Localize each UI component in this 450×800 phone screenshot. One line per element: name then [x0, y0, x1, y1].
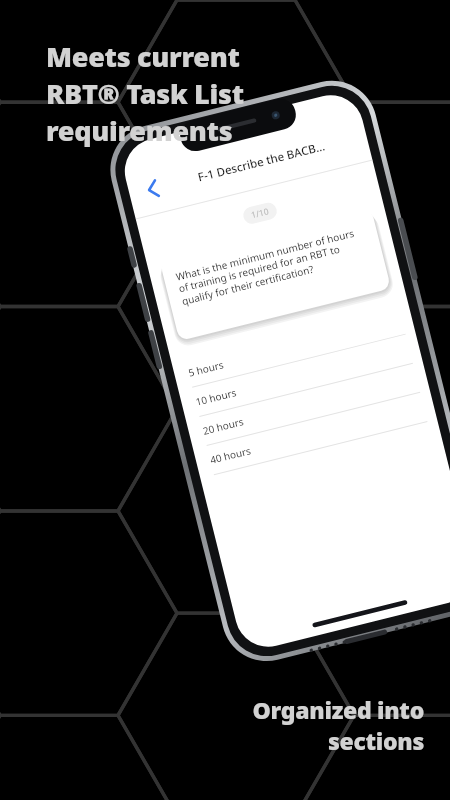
- staticText: requirements: [46, 112, 233, 149]
- staticText: sections: [327, 725, 424, 756]
- staticText: Organized into: [252, 694, 424, 725]
- button[interactable]: App screenshot preview: [0, 0, 450, 800]
- staticText: Meets current: [46, 38, 240, 75]
- staticText: RBT® Task List: [46, 75, 244, 112]
